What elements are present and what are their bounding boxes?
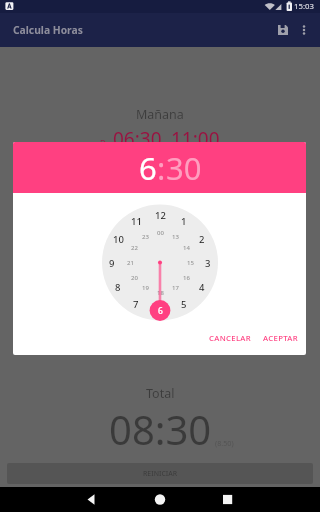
staticText: 15 — [187, 259, 194, 267]
button[interactable]: ACEPTAR — [257, 328, 304, 349]
staticText: 9 — [109, 257, 115, 270]
staticText: 8 — [115, 281, 121, 294]
button[interactable]: 6 — [139, 147, 157, 189]
staticText: 4 — [199, 281, 205, 294]
staticText: 00 — [157, 229, 164, 237]
staticText: 21 — [127, 259, 134, 267]
staticText: 16 — [183, 274, 190, 282]
staticText: CANCELAR — [209, 333, 251, 344]
staticText: Calcula Horas — [13, 23, 83, 37]
button[interactable]: CANCELAR — [203, 328, 257, 349]
staticText: 7 — [133, 298, 139, 311]
staticText: 11:00 — [171, 126, 220, 152]
staticText: 14 — [183, 244, 190, 252]
button[interactable]: More options — [290, 16, 318, 44]
staticText: 15:03 — [294, 1, 314, 12]
staticText: 17 — [172, 284, 179, 292]
staticText: De — [100, 138, 113, 149]
staticText: 18 — [157, 289, 164, 297]
staticText: 11 — [131, 215, 142, 228]
staticText: a — [162, 138, 171, 149]
staticText: 6 — [158, 305, 163, 317]
staticText: 12 — [155, 209, 166, 222]
staticText: 1 — [181, 215, 187, 228]
staticText: 3 — [205, 257, 211, 270]
staticText: 19 — [142, 284, 149, 292]
staticText: Mañana — [136, 106, 184, 123]
staticText: : — [157, 147, 166, 189]
button[interactable]: 30 — [166, 147, 202, 189]
staticText: ACEPTAR — [263, 333, 298, 344]
staticText: 22 — [131, 244, 138, 252]
staticText: 2 — [199, 233, 205, 246]
staticText: 10 — [113, 233, 124, 246]
staticText: 08:30 — [109, 402, 212, 456]
button[interactable]: Save — [269, 16, 297, 44]
staticText: 23 — [142, 233, 149, 241]
staticText: Total — [146, 385, 175, 402]
staticText: 13 — [172, 233, 179, 241]
staticText: 20 — [131, 274, 138, 282]
staticText: 06:30 — [113, 126, 162, 152]
staticText: 5 — [181, 298, 187, 311]
staticText: (8.50) — [215, 438, 234, 448]
staticText: REINICIAR — [143, 469, 178, 478]
